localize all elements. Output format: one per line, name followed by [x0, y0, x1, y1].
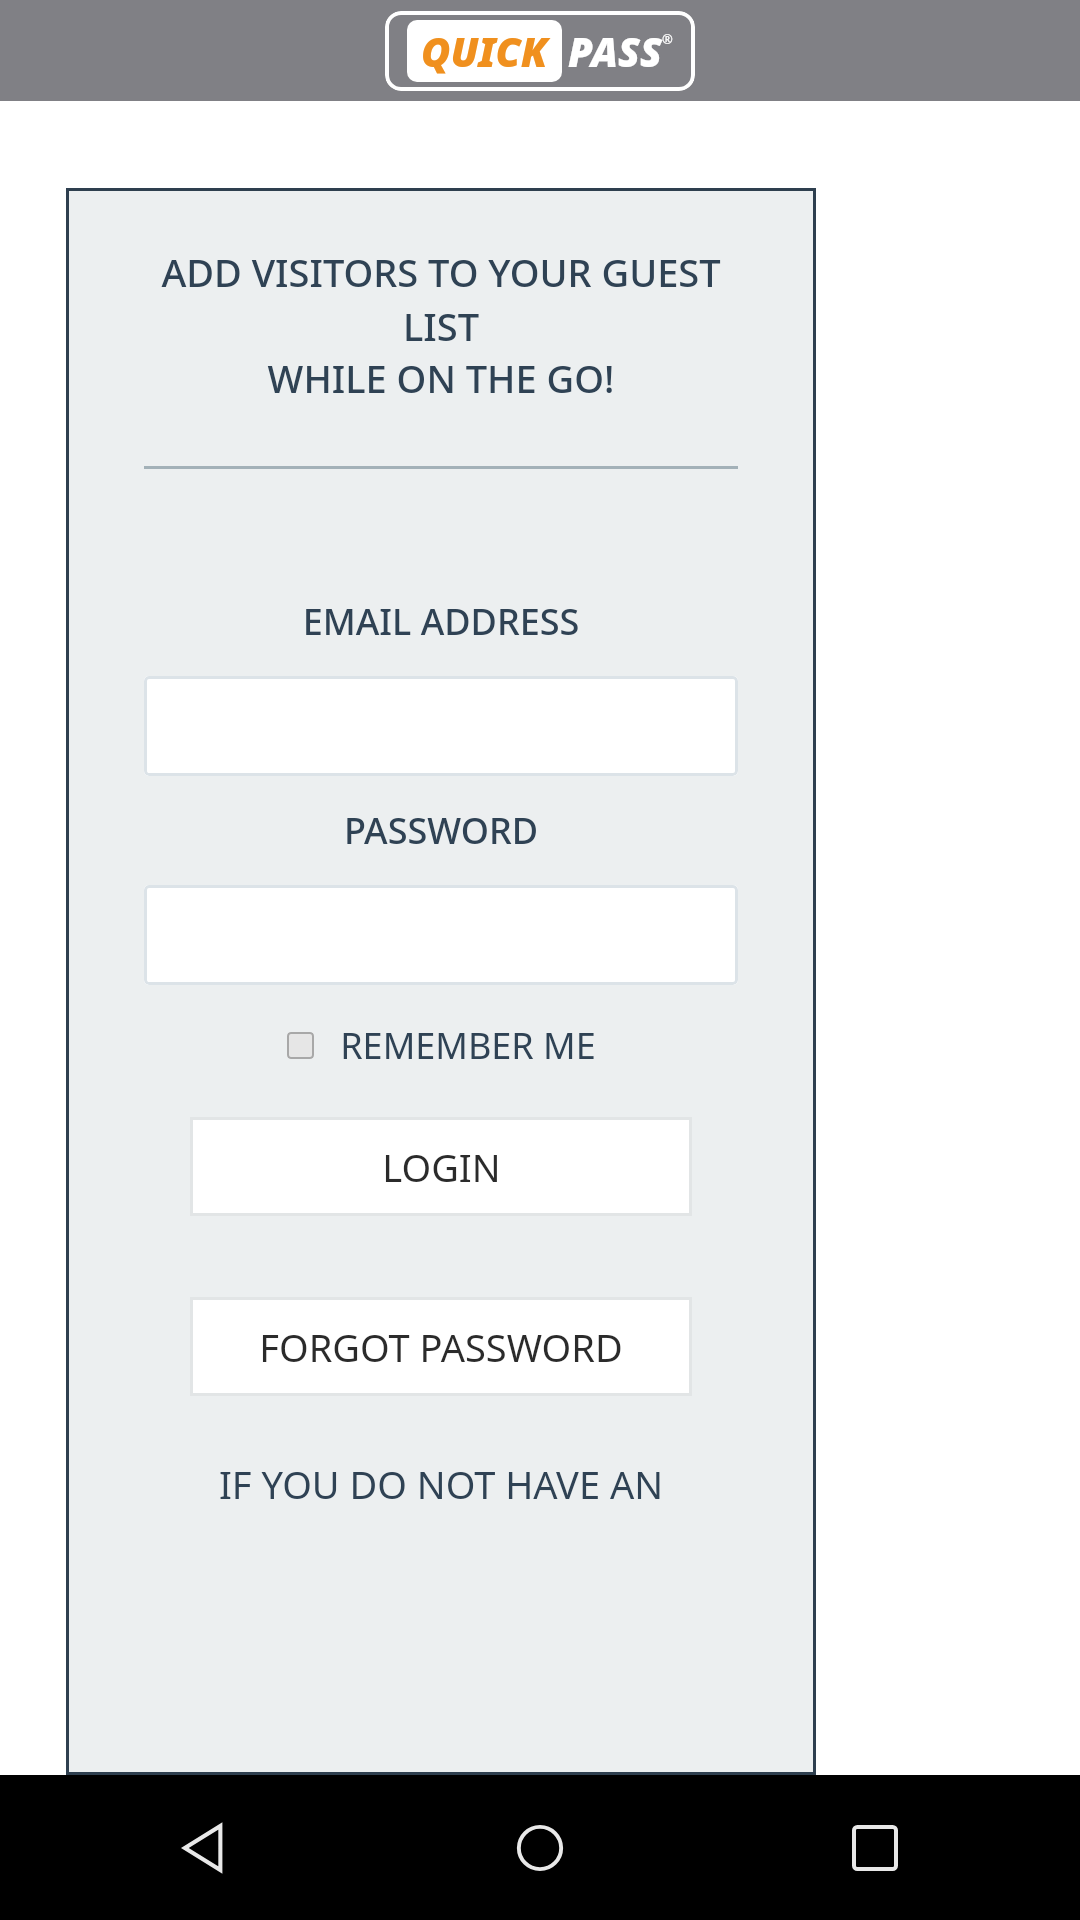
staticText: PASS — [568, 24, 662, 78]
button[interactable]: QuickPass logo — [385, 11, 695, 91]
staticText: IF YOU DO NOT HAVE AN — [66, 1458, 816, 1510]
staticText: PASSWORD — [66, 806, 816, 855]
button[interactable]: REMEMBER ME — [66, 1021, 816, 1070]
staticText: REMEMBER ME — [340, 1021, 596, 1070]
staticText: LOGIN — [382, 1141, 501, 1193]
staticText: WHILE ON THE GO! — [66, 352, 816, 404]
button[interactable] — [144, 885, 738, 985]
button[interactable]: Back — [150, 1793, 260, 1903]
button[interactable]: Home — [485, 1793, 595, 1903]
staticText: ® — [662, 30, 673, 48]
staticText: FORGOT PASSWORD — [259, 1321, 623, 1373]
staticText: EMAIL ADDRESS — [66, 597, 816, 646]
button[interactable]: FORGOT PASSWORD — [190, 1297, 692, 1396]
button[interactable]: Recent apps — [820, 1793, 930, 1903]
staticText: ADD VISITORS TO YOUR GUEST LIST — [140, 246, 742, 352]
staticText: QUICK — [421, 24, 548, 78]
button[interactable] — [144, 676, 738, 776]
button[interactable]: LOGIN — [190, 1117, 692, 1216]
